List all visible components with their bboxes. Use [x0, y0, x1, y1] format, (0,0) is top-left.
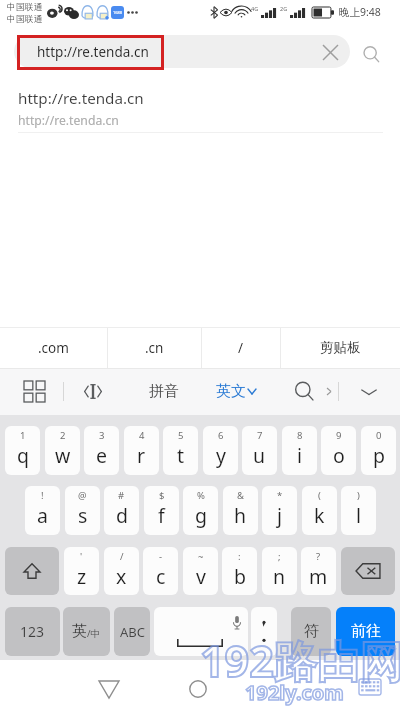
- staticText: ': [80, 550, 83, 563]
- button[interactable]: !: [25, 486, 60, 535]
- staticText: .com: [38, 339, 69, 357]
- staticText: %: [197, 489, 205, 502]
- button[interactable]: ~: [183, 547, 218, 595]
- button[interactable]: 3: [84, 426, 119, 475]
- staticText: ABC: [120, 623, 145, 641]
- staticText: 1688: [113, 10, 123, 15]
- staticText: @: [78, 489, 87, 502]
- button[interactable]: &: [223, 486, 258, 535]
- button[interactable]: -: [143, 547, 178, 595]
- button[interactable]: Hide keyboard: [346, 368, 391, 415]
- button[interactable]: 前往: [336, 607, 395, 656]
- staticText: $: [159, 489, 165, 502]
- button[interactable]: 4: [124, 426, 159, 475]
- staticText: 中国联通: [7, 2, 43, 13]
- button[interactable]: *: [262, 486, 297, 535]
- staticText: o: [333, 442, 345, 469]
- staticText: 5: [178, 429, 184, 442]
- staticText: !: [41, 489, 44, 502]
- button[interactable]: 2: [45, 426, 80, 475]
- button[interactable]: http://re.tenda.cn: [0, 80, 400, 133]
- button[interactable]: @: [65, 486, 100, 535]
- staticText: 剪贴板: [320, 339, 361, 356]
- staticText: n: [273, 563, 286, 590]
- staticText: b: [234, 563, 246, 590]
- staticText: d: [116, 502, 128, 529]
- staticText: a: [37, 502, 48, 529]
- staticText: 晚上9:48: [339, 5, 381, 19]
- button[interactable]: ;: [262, 547, 297, 595]
- button[interactable]: 0: [361, 426, 396, 475]
- button[interactable]: %: [183, 486, 218, 535]
- staticText: http://re.tenda.cn: [18, 88, 144, 109]
- staticText: 中国联通: [7, 14, 43, 25]
- staticText: m: [309, 563, 328, 590]
- button[interactable]: $: [144, 486, 179, 535]
- button[interactable]: 剪贴板: [280, 327, 400, 368]
- staticText: (: [318, 489, 321, 502]
- button[interactable]: 英: [63, 607, 110, 656]
- staticText: v: [196, 563, 206, 590]
- staticText: 192路由网: [200, 631, 400, 690]
- staticText: l: [356, 502, 362, 529]
- button[interactable]: 9: [321, 426, 356, 475]
- staticText: 192ly.com: [245, 679, 344, 706]
- staticText: 0: [376, 429, 382, 442]
- button[interactable]: Backspace: [341, 547, 395, 595]
- button[interactable]: (: [302, 486, 337, 535]
- button[interactable]: 拼音: [131, 368, 196, 415]
- button[interactable]: Shift: [5, 547, 59, 595]
- button[interactable]: Recent apps: [270, 671, 306, 707]
- staticText: 123: [20, 622, 45, 641]
- button[interactable]: 8: [282, 426, 317, 475]
- button[interactable]: Search: [357, 40, 385, 68]
- staticText: *: [277, 489, 283, 502]
- staticText: k: [314, 502, 325, 529]
- button[interactable]: /: [201, 327, 280, 368]
- staticText: .cn: [145, 339, 164, 357]
- button[interactable]: 7: [242, 426, 277, 475]
- staticText: f: [158, 502, 165, 529]
- staticText: j: [277, 502, 283, 529]
- button[interactable]: .com: [0, 327, 107, 368]
- staticText: ~: [198, 550, 204, 563]
- button[interactable]: http://re.tenda.cn: [14, 35, 350, 68]
- button[interactable]: Home: [180, 671, 216, 707]
- button[interactable]: Move cursor: [68, 368, 117, 415]
- staticText: 2G: [280, 5, 288, 12]
- button[interactable]: Clear: [316, 38, 344, 66]
- button[interactable]: 英文: [205, 368, 267, 415]
- staticText: p: [373, 442, 385, 469]
- button[interactable]: Comma and period: [251, 607, 277, 656]
- staticText: 4: [139, 429, 145, 442]
- staticText: q: [17, 442, 29, 469]
- button[interactable]: :: [222, 547, 257, 595]
- button[interactable]: #: [104, 486, 139, 535]
- button[interactable]: 5: [163, 426, 198, 475]
- staticText: e: [96, 442, 107, 469]
- button[interactable]: ): [341, 486, 376, 535]
- staticText: y: [216, 442, 226, 469]
- button[interactable]: Back: [91, 671, 127, 707]
- button[interactable]: 符: [291, 607, 331, 656]
- staticText: ?: [316, 550, 321, 563]
- staticText: r: [137, 442, 146, 469]
- staticText: 英: [72, 622, 87, 641]
- staticText: 6: [218, 429, 224, 442]
- button[interactable]: Space: [154, 607, 248, 656]
- staticText: s: [78, 502, 88, 529]
- button[interactable]: 6: [203, 426, 238, 475]
- staticText: t: [177, 442, 185, 469]
- button[interactable]: /: [104, 547, 139, 595]
- button[interactable]: 123: [5, 607, 60, 656]
- button[interactable]: ABC: [114, 607, 150, 656]
- button[interactable]: Search: [286, 368, 334, 415]
- button[interactable]: ?: [301, 547, 336, 595]
- staticText: 拼音: [149, 382, 179, 401]
- button[interactable]: .cn: [107, 327, 201, 368]
- button[interactable]: ': [64, 547, 99, 595]
- button[interactable]: 1: [5, 426, 40, 475]
- button[interactable]: Keyboard layouts: [10, 368, 59, 415]
- staticText: http://re.tenda.cn: [37, 43, 149, 61]
- staticText: u: [253, 442, 266, 469]
